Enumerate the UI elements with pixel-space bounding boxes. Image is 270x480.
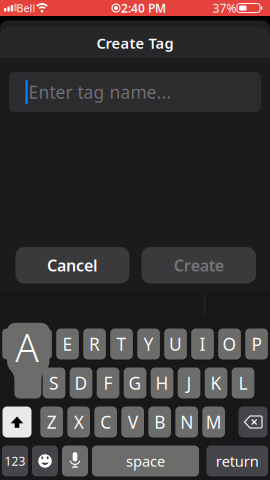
staticText: O (222, 332, 236, 355)
button[interactable]: V (121, 406, 144, 437)
button[interactable]: Create (141, 247, 256, 283)
button[interactable]: Cancel (15, 247, 129, 283)
button[interactable]: 123 (2, 445, 28, 476)
staticText: H (155, 371, 168, 394)
button[interactable] (238, 406, 267, 437)
staticText: S (49, 371, 59, 394)
button[interactable] (2, 406, 31, 437)
button[interactable]: Y (137, 328, 160, 359)
staticText: Cancel (47, 255, 98, 276)
button[interactable]: H (151, 367, 173, 398)
button[interactable]: F (97, 367, 119, 398)
button[interactable]: E (56, 328, 79, 359)
staticText: J (186, 371, 191, 394)
button[interactable] (29, 328, 52, 359)
staticText: P (251, 332, 261, 355)
button[interactable]: S (43, 367, 65, 398)
staticText: C (100, 410, 111, 433)
staticText: I (199, 332, 205, 355)
button[interactable] (32, 445, 58, 476)
staticText: Z (47, 410, 57, 433)
staticText: U (169, 332, 182, 355)
button[interactable]: space (92, 445, 199, 476)
button[interactable]: R (83, 328, 106, 359)
staticText: return (216, 451, 259, 471)
button[interactable]: C (94, 406, 117, 437)
button[interactable]: X (67, 406, 90, 437)
button[interactable]: B (148, 406, 171, 437)
staticText: E (63, 332, 73, 355)
staticText: K (210, 371, 221, 394)
staticText: G (129, 371, 142, 394)
staticText: Enter tag name... (28, 80, 171, 103)
staticText: T (116, 332, 126, 355)
button[interactable]: Enter tag name... (9, 72, 261, 112)
staticText: D (74, 371, 87, 394)
staticText: L (238, 371, 247, 394)
button[interactable]: M (202, 406, 225, 437)
button[interactable]: G (124, 367, 146, 398)
staticText: space (126, 451, 165, 471)
staticText: V (128, 410, 138, 433)
button[interactable] (62, 445, 88, 476)
staticText: A (15, 321, 39, 373)
button[interactable]: T (110, 328, 133, 359)
staticText: 123 (4, 453, 25, 469)
staticText: 37% (212, 0, 236, 16)
staticText: N (180, 410, 193, 433)
button[interactable]: N (175, 406, 198, 437)
staticText: Y (143, 332, 153, 355)
staticText: F (103, 371, 112, 394)
button[interactable]: O (218, 328, 241, 359)
staticText: X (74, 410, 84, 433)
staticText: B (154, 410, 165, 433)
button[interactable]: U (164, 328, 187, 359)
button[interactable]: Z (40, 406, 63, 437)
staticText: Create (174, 255, 224, 276)
button[interactable]: return (206, 445, 268, 476)
button[interactable]: K (205, 367, 227, 398)
button[interactable]: D (70, 367, 92, 398)
staticText: M (206, 410, 222, 433)
button[interactable]: L (232, 367, 254, 398)
staticText: 2:40 PM (121, 0, 166, 16)
button[interactable]: J (178, 367, 200, 398)
button[interactable]: P (245, 328, 268, 359)
staticText: Create Tag (96, 33, 173, 53)
staticText: R (89, 332, 100, 355)
staticText: Bell (16, 1, 35, 15)
button[interactable] (2, 328, 25, 359)
button[interactable]: I (191, 328, 214, 359)
